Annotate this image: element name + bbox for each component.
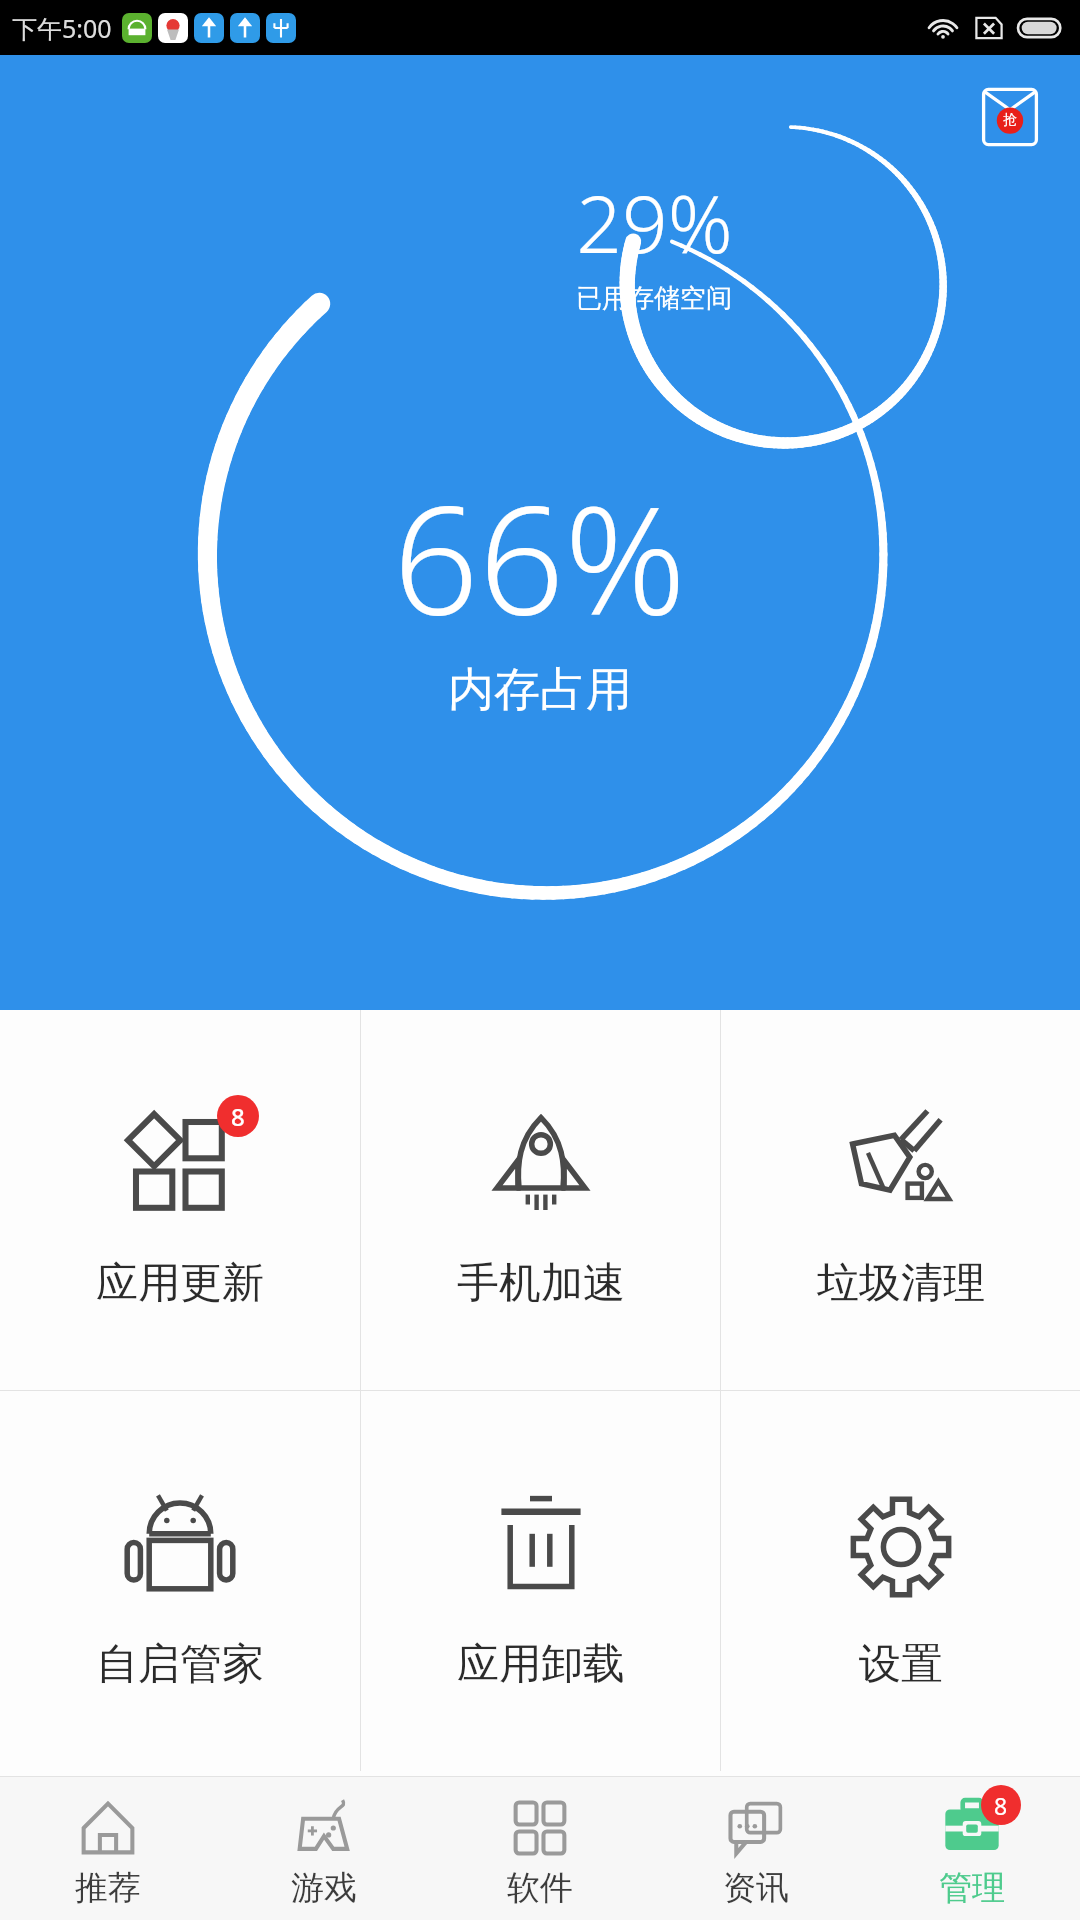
staticText: 自启管家: [96, 1638, 264, 1691]
staticText: 下午5:00: [12, 11, 112, 45]
button[interactable]: 手机加速: [361, 1010, 720, 1390]
staticText: 手机加速: [457, 1257, 625, 1310]
staticText: 应用更新: [96, 1257, 264, 1310]
button[interactable]: 游戏: [216, 1777, 432, 1920]
staticText: 推荐: [75, 1867, 141, 1909]
staticText: 抢: [1003, 111, 1017, 129]
button[interactable]: 应用卸载: [361, 1391, 720, 1771]
button[interactable]: 设置: [721, 1391, 1080, 1771]
button[interactable]: 垃圾清理: [721, 1010, 1080, 1390]
staticText: 游戏: [291, 1867, 357, 1909]
button[interactable]: 资讯: [648, 1777, 864, 1920]
staticText: 内存占用: [448, 661, 632, 719]
button[interactable]: 推荐: [0, 1777, 216, 1920]
button[interactable]: 软件: [432, 1777, 648, 1920]
staticText: 资讯: [723, 1867, 789, 1909]
staticText: 8: [994, 1790, 1008, 1821]
staticText: 管理: [939, 1867, 1005, 1909]
staticText: 设置: [859, 1638, 943, 1691]
staticText: 应用卸载: [457, 1638, 625, 1691]
staticText: 已用存储空间: [576, 282, 732, 315]
staticText: 66%: [393, 455, 687, 659]
staticText: 垃圾清理: [817, 1257, 985, 1310]
button[interactable]: 自启管家: [0, 1391, 360, 1771]
staticText: 29%: [576, 167, 733, 276]
button[interactable]: Red packet: [980, 87, 1040, 147]
staticText: 软件: [507, 1867, 573, 1909]
button[interactable]: 8: [864, 1777, 1080, 1920]
staticText: 8: [231, 1100, 245, 1133]
button[interactable]: 8: [0, 1010, 360, 1390]
